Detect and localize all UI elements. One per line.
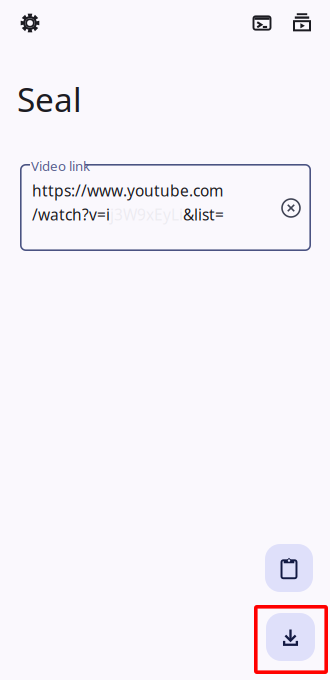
staticText: /watch?v=i (32, 204, 110, 225)
button[interactable]: Paste link (265, 544, 313, 592)
button[interactable]: Download (266, 613, 315, 661)
staticText: &list= (183, 204, 224, 225)
button[interactable]: Downloads (280, 0, 324, 44)
staticText: Seal (17, 77, 82, 121)
button[interactable]: Console (240, 1, 284, 45)
staticText: j3W9xEyLi (110, 204, 183, 225)
staticText: Video link (31, 157, 90, 175)
button[interactable]: Clear text (274, 191, 308, 225)
staticText: https://www.youtube.com (32, 180, 223, 201)
button[interactable]: Settings (8, 1, 52, 45)
